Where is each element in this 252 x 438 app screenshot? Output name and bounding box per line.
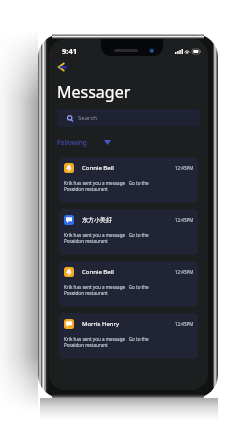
button[interactable]: 东方小美好: [59, 209, 198, 255]
staticText: Krik has sent you a message Go to the Po…: [64, 180, 149, 192]
staticText: 东方小美好: [82, 216, 112, 224]
staticText: Morris Henry: [82, 320, 120, 328]
staticText: Connie Bell: [82, 164, 114, 172]
button[interactable]: Following: [57, 138, 111, 147]
staticText: Krik has sent you a message Go to the Po…: [64, 336, 149, 348]
staticText: 12:45PM: [175, 217, 194, 223]
button[interactable]: Connie Bell: [59, 157, 198, 203]
staticText: Search: [78, 114, 97, 122]
button[interactable]: Search: [57, 109, 200, 127]
staticText: Messager: [57, 81, 131, 103]
staticText: 9:41: [62, 46, 77, 56]
staticText: Following: [57, 138, 87, 147]
button[interactable]: Connie Bell: [59, 261, 198, 307]
staticText: Connie Bell: [82, 268, 114, 276]
button[interactable]: Morris Henry: [59, 313, 198, 359]
staticText: 12:45PM: [175, 269, 194, 275]
button[interactable]: Back: [57, 62, 69, 72]
staticText: Krik has sent you a message Go to the Po…: [64, 232, 149, 244]
staticText: 12:45PM: [175, 165, 194, 171]
staticText: Krik has sent you a message Go to the Po…: [64, 284, 149, 296]
staticText: 12:45PM: [175, 321, 194, 327]
